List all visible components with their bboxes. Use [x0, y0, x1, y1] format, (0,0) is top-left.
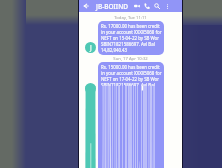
staticText: SBIN71821586697. Avl Bal [101, 86, 155, 168]
button[interactable]: Search [152, 1, 162, 11]
staticText: 14,82,940.43 [101, 47, 128, 53]
staticText: Sun, 17 Apr 10:32 [79, 56, 182, 62]
staticText: NEFT on 15-04-22 by SB Wor [101, 35, 160, 41]
staticText: J [90, 43, 92, 52]
button[interactable]: Rs. 17000.00 has been credit [98, 21, 164, 55]
staticText: 14,82,940.43 [101, 88, 128, 94]
staticText: J [90, 86, 92, 168]
staticText: Rs. 15000.00 has been credit [101, 64, 160, 70]
button[interactable]: Contact avatar [85, 83, 96, 94]
staticText: in your account XXXX5068 for [101, 70, 162, 76]
staticText: NEFT on 17-04-22 by SB Wor [101, 76, 160, 82]
button[interactable]: Video call [132, 1, 142, 11]
staticText: JB-BOIIND [96, 2, 128, 11]
button[interactable]: Contact avatar [85, 86, 96, 168]
staticText: in your account XXXX5068 for [101, 29, 162, 35]
staticText: Rs. 17000.00 has been credit [101, 23, 160, 29]
button[interactable]: More options [162, 1, 172, 11]
staticText: SBIN71821586697. Avl Bal [101, 41, 155, 47]
button[interactable]: Contact avatar [85, 42, 96, 53]
button[interactable]: Call [142, 1, 152, 11]
staticText: SBIN71821586697. Avl Bal [101, 82, 155, 88]
button[interactable]: Rs. 15000.00 has been credit [98, 86, 164, 168]
staticText: Today, Tue 11:11 [79, 15, 182, 21]
button[interactable]: Back [81, 1, 91, 11]
button[interactable]: Rs. 15000.00 has been credit [98, 62, 164, 96]
